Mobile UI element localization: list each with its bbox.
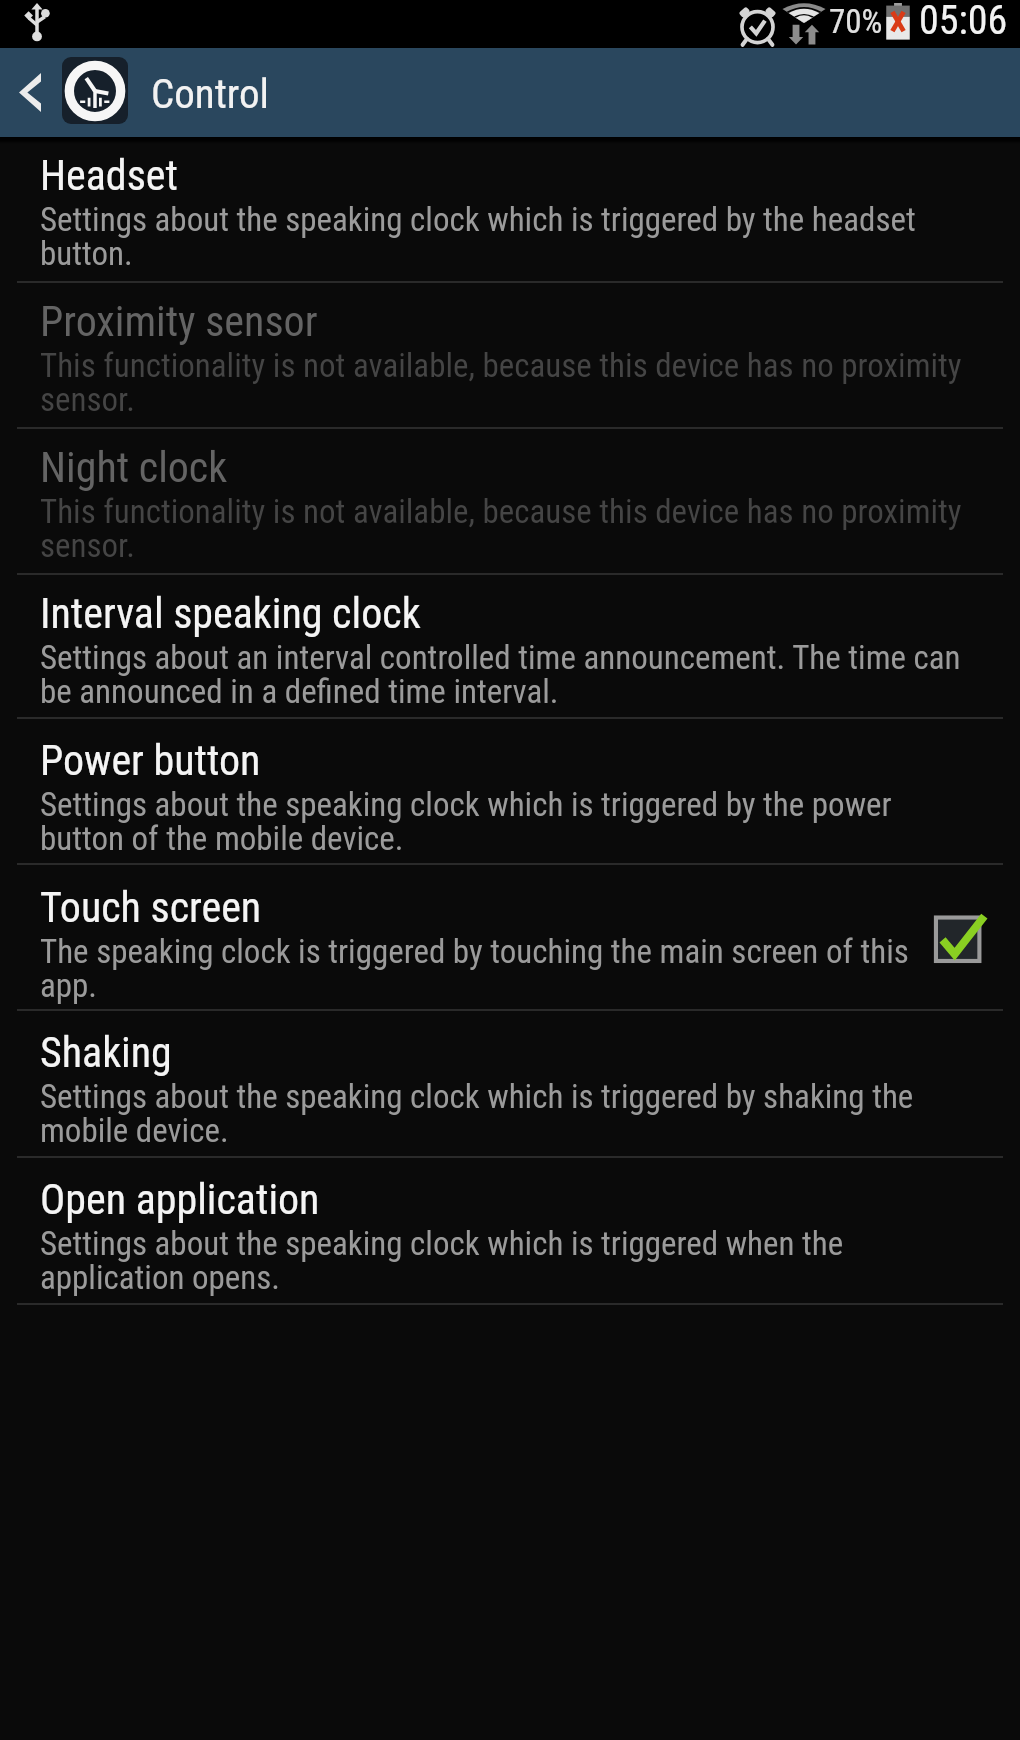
staticText: Settings about the speaking clock which … <box>40 1224 968 1297</box>
staticText: Proximity sensor <box>40 297 318 346</box>
button[interactable]: Headset <box>0 137 1020 281</box>
staticText: Settings about an interval controlled ti… <box>40 638 968 711</box>
button[interactable]: Shaking <box>0 1011 1020 1156</box>
staticText: This functionality is not available, bec… <box>40 346 968 419</box>
staticText: Headset <box>40 151 178 200</box>
staticText: Touch screen <box>40 883 262 932</box>
staticText: 70% <box>829 2 883 41</box>
staticText: Shaking <box>40 1028 172 1077</box>
staticText: 05:06 <box>919 0 1008 44</box>
button[interactable]: Proximity sensor <box>0 283 1020 427</box>
staticText: The speaking clock is triggered by touch… <box>40 932 968 1005</box>
button[interactable]: Interval speaking clock <box>0 575 1020 717</box>
button[interactable]: Navigate up <box>2 56 58 128</box>
button[interactable]: Open application <box>0 1158 1020 1303</box>
staticText: Control <box>151 70 269 118</box>
button[interactable]: Touch screen enabled <box>931 909 986 964</box>
button[interactable]: Power button <box>0 719 1020 863</box>
staticText: Interval speaking clock <box>40 589 421 638</box>
staticText: Settings about the speaking clock which … <box>40 1077 968 1150</box>
staticText: This functionality is not available, bec… <box>40 492 968 565</box>
staticText: Night clock <box>40 443 228 492</box>
staticText: Settings about the speaking clock which … <box>40 785 968 858</box>
button[interactable]: Touch screen <box>0 865 1020 1009</box>
staticText: Power button <box>40 736 261 785</box>
button[interactable]: Night clock <box>0 429 1020 573</box>
staticText: Open application <box>40 1175 320 1224</box>
staticText: Settings about the speaking clock which … <box>40 200 968 273</box>
